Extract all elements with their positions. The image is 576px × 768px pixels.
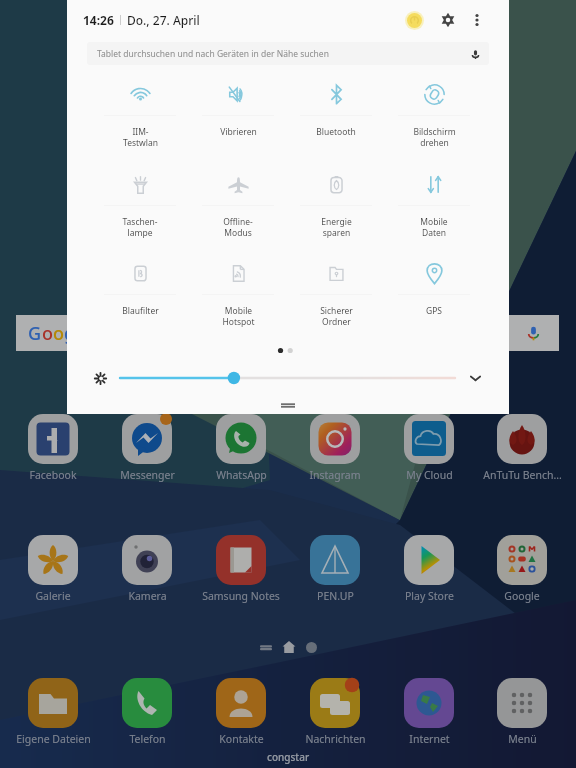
button[interactable]: More options (465, 8, 489, 32)
button[interactable]: Nachrichten (289, 678, 381, 746)
staticText: IIM- Testwlan (123, 126, 158, 148)
button[interactable]: GPS (388, 262, 480, 346)
staticText: o (53, 321, 64, 346)
staticText: Facebook (29, 468, 77, 482)
staticText: Blaufilter (122, 305, 159, 317)
button[interactable]: Tablet durchsuchen und nach Geräten in d… (87, 42, 489, 65)
button[interactable]: Galerie (7, 535, 99, 603)
staticText: Mobile Daten (420, 216, 448, 238)
staticText: Kamera (128, 589, 167, 603)
button[interactable]: IIM- Testwlan (94, 83, 186, 167)
button[interactable]: Messenger (101, 414, 193, 482)
button[interactable]: Power off (402, 8, 426, 32)
staticText: My Cloud (406, 468, 453, 482)
button[interactable]: WhatsApp (195, 414, 287, 482)
staticText: Do., 27. April (127, 12, 200, 28)
staticText: Mobile Hotspot (222, 305, 255, 327)
button[interactable]: Samsung Notes (195, 535, 287, 603)
button[interactable]: Mobile Daten (388, 173, 480, 257)
staticText: o (42, 321, 53, 346)
staticText: GPS (426, 305, 442, 317)
staticText: Internet (409, 732, 450, 746)
button[interactable]: Kamera (101, 535, 193, 603)
button[interactable]: My Cloud (383, 414, 475, 482)
button[interactable]: Bluetooth (290, 83, 382, 167)
staticText: Taschen- lampe (122, 216, 158, 238)
button[interactable]: Vibrieren (192, 83, 284, 167)
button[interactable]: Settings (436, 8, 460, 32)
button[interactable]: Blaufilter (94, 262, 186, 346)
staticText: Galerie (35, 589, 71, 603)
staticText: Play Store (405, 589, 454, 603)
staticText: Google (504, 589, 540, 603)
staticText: Offline- Modus (223, 216, 253, 238)
staticText: G (28, 321, 42, 346)
staticText: Sicherer Ordner (320, 305, 353, 327)
button[interactable]: Offline- Modus (192, 173, 284, 257)
staticText: AnTuTu Bench… (483, 468, 562, 482)
button[interactable]: Eigene Dateien (7, 678, 99, 746)
staticText: Menü (508, 732, 537, 746)
staticText: Eigene Dateien (16, 732, 91, 746)
staticText: 14:26 (83, 12, 114, 28)
button[interactable]: Instagram (289, 414, 381, 482)
button[interactable]: Expand panel (464, 367, 486, 389)
staticText: PEN.UP (317, 589, 354, 603)
staticText: WhatsApp (216, 468, 267, 482)
button[interactable]: Google (476, 535, 568, 603)
staticText: Instagram (309, 468, 361, 482)
staticText: Vibrieren (220, 126, 257, 138)
staticText: congstar (267, 750, 310, 764)
button[interactable]: Sicherer Ordner (290, 262, 382, 346)
staticText: Bluetooth (316, 126, 356, 138)
button[interactable]: Internet (383, 678, 475, 746)
button[interactable]: AnTuTu Bench… (476, 414, 568, 482)
button[interactable]: Kontakte (195, 678, 287, 746)
button[interactable]: Menü (476, 678, 568, 746)
staticText: Telefon (129, 732, 166, 746)
button[interactable]: Facebook (7, 414, 99, 482)
button[interactable]: Bildschirm drehen (388, 83, 480, 167)
staticText: Energie sparen (321, 216, 352, 238)
staticText: Bildschirm drehen (413, 126, 456, 148)
staticText: g (64, 321, 76, 346)
button[interactable]: PEN.UP (289, 535, 381, 603)
staticText: Messenger (120, 468, 175, 482)
button[interactable]: Telefon (101, 678, 193, 746)
button[interactable]: Adaptive brightness (89, 367, 111, 389)
button[interactable]: G (16, 315, 559, 351)
button[interactable]: Taschen- lampe (94, 173, 186, 257)
button[interactable]: Energie sparen (290, 173, 382, 257)
staticText: Kontakte (219, 732, 264, 746)
staticText: Nachrichten (305, 732, 366, 746)
button[interactable]: Mobile Hotspot (192, 262, 284, 346)
button[interactable]: Play Store (383, 535, 475, 603)
staticText: Samsung Notes (202, 589, 280, 603)
staticText: Tablet durchsuchen und nach Geräten in d… (97, 48, 329, 60)
